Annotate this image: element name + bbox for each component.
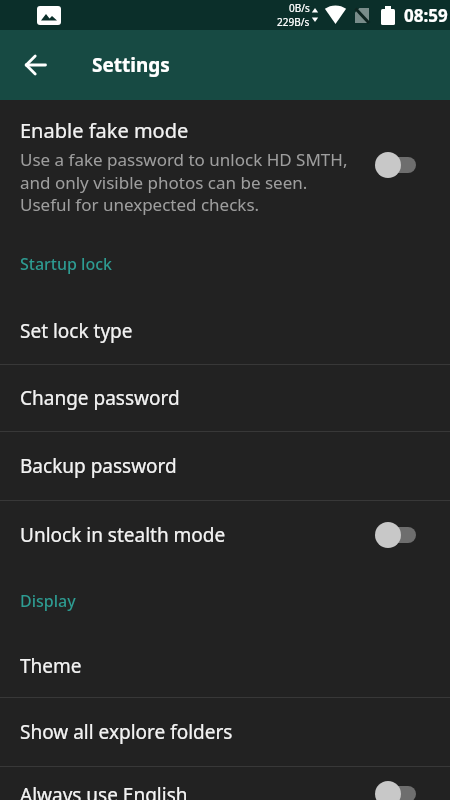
staticText: Startup lock: [20, 253, 112, 275]
button[interactable]: Enable fake mode: [0, 100, 450, 230]
button[interactable]: Unlock in stealth mode: [0, 501, 450, 568]
staticText: 0B/s: [289, 1, 310, 15]
staticText: Display: [20, 590, 76, 612]
staticText: Enable fake mode: [20, 117, 189, 144]
staticText: Use a fake password to unlock HD SMTH, a…: [20, 148, 348, 216]
staticText: Backup password: [20, 453, 177, 479]
button[interactable]: [14, 44, 56, 86]
staticText: Set lock type: [20, 318, 133, 344]
button[interactable]: Change password: [0, 365, 450, 431]
staticText: 229B/s: [277, 15, 310, 29]
staticText: Change password: [20, 385, 180, 411]
staticText: 08:59: [404, 4, 448, 27]
staticText: Unlock in stealth mode: [20, 522, 226, 548]
staticText: Show all explore folders: [20, 719, 233, 745]
button[interactable]: Always use English: [0, 767, 450, 800]
button[interactable]: Set lock type: [0, 298, 450, 364]
button[interactable]: Backup password: [0, 432, 450, 500]
button[interactable]: Show all explore folders: [0, 698, 450, 766]
staticText: Always use English: [20, 782, 188, 800]
staticText: Theme: [20, 653, 82, 679]
staticText: Settings: [92, 52, 170, 78]
button[interactable]: Theme: [0, 634, 450, 697]
